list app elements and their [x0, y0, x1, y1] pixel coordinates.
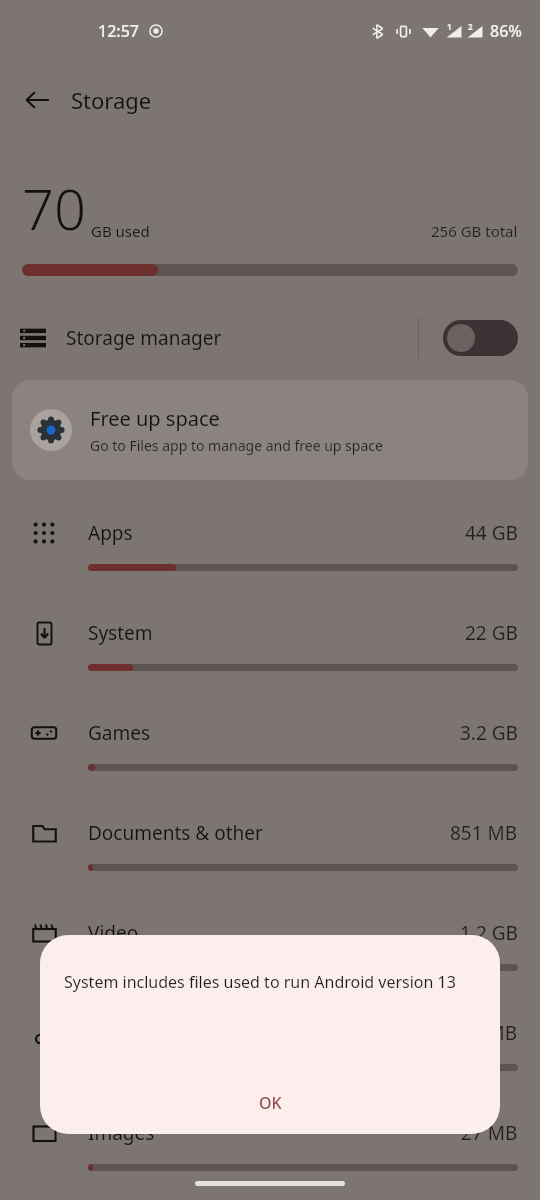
- staticText: 240 MB: [450, 1020, 518, 1046]
- staticText: Storage manager: [66, 325, 222, 351]
- staticText: Video: [88, 920, 139, 946]
- staticText: System includes files used to run Androi…: [64, 971, 456, 993]
- staticText: Free up space: [90, 405, 220, 432]
- staticText: Storage: [71, 85, 152, 115]
- button[interactable]: Back: [14, 76, 62, 124]
- button[interactable]: Audio: [0, 1002, 540, 1102]
- staticText: Images: [88, 1120, 155, 1146]
- staticText: 22 GB: [465, 620, 518, 646]
- staticText: 86%: [490, 20, 522, 42]
- staticText: 256 GB total: [431, 221, 518, 241]
- button[interactable]: Documents & other: [0, 802, 540, 902]
- staticText: Go to Files app to manage and free up sp…: [90, 436, 383, 455]
- button[interactable]: Video: [0, 902, 540, 1002]
- button[interactable]: OK: [40, 1072, 500, 1134]
- staticText: 1: [447, 21, 452, 32]
- staticText: 27 MB: [461, 1120, 518, 1146]
- button[interactable]: Free up space: [12, 380, 528, 480]
- button[interactable]: Storage manager toggle: [443, 320, 518, 356]
- staticText: 2: [468, 21, 473, 32]
- staticText: 3.2 GB: [460, 720, 518, 746]
- staticText: Apps: [88, 520, 133, 546]
- staticText: Games: [88, 720, 151, 746]
- staticText: 1.2 GB: [460, 920, 518, 946]
- button[interactable]: Apps: [0, 502, 540, 602]
- staticText: 44 GB: [465, 520, 518, 546]
- staticText: 12:57: [98, 20, 139, 42]
- staticText: GB used: [91, 221, 150, 241]
- staticText: OK: [259, 1092, 282, 1114]
- button[interactable]: Images: [0, 1102, 540, 1200]
- button[interactable]: Games: [0, 702, 540, 802]
- button[interactable]: Storage manager: [0, 302, 540, 374]
- button[interactable]: System: [0, 602, 540, 702]
- staticText: 851 MB: [450, 820, 518, 846]
- staticText: 70: [22, 170, 86, 246]
- staticText: System: [88, 620, 153, 646]
- staticText: Documents & other: [88, 820, 263, 846]
